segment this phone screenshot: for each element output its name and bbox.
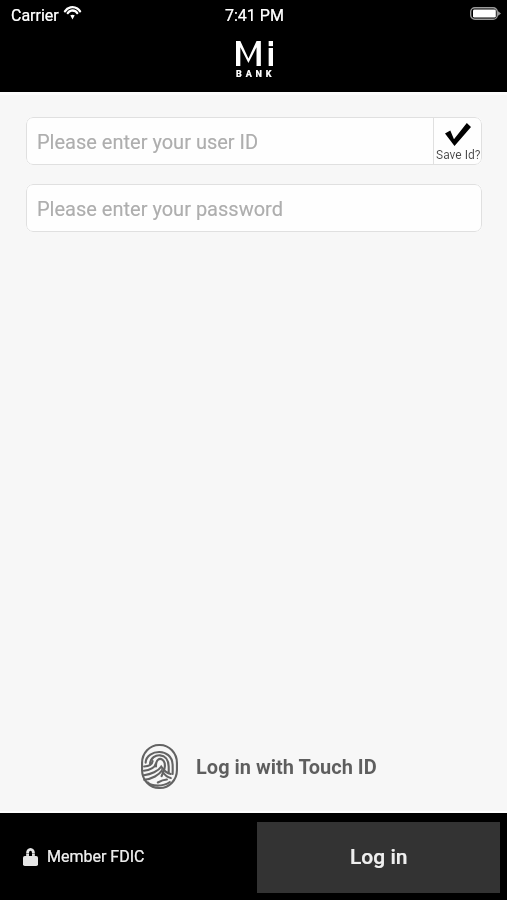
staticText: Log in	[350, 845, 408, 870]
staticText: 7:41 PM	[225, 6, 284, 25]
staticText: Please enter your password	[37, 197, 283, 220]
button[interactable]: Please enter your password	[26, 184, 482, 232]
staticText: Carrier	[11, 6, 59, 25]
staticText: Save Id?	[436, 148, 481, 162]
button[interactable]: Save Id	[434, 117, 482, 165]
button[interactable]: Please enter your user ID	[26, 117, 434, 165]
staticText: Member FDIC	[47, 847, 145, 866]
button[interactable]: Log in with Touch ID	[141, 744, 377, 789]
button[interactable]: Log in	[257, 822, 500, 893]
staticText: Please enter your user ID	[37, 130, 259, 153]
staticText: BANK	[236, 69, 276, 80]
button[interactable]: Member FDIC	[0, 813, 257, 900]
staticText: Log in with Touch ID	[196, 755, 377, 778]
